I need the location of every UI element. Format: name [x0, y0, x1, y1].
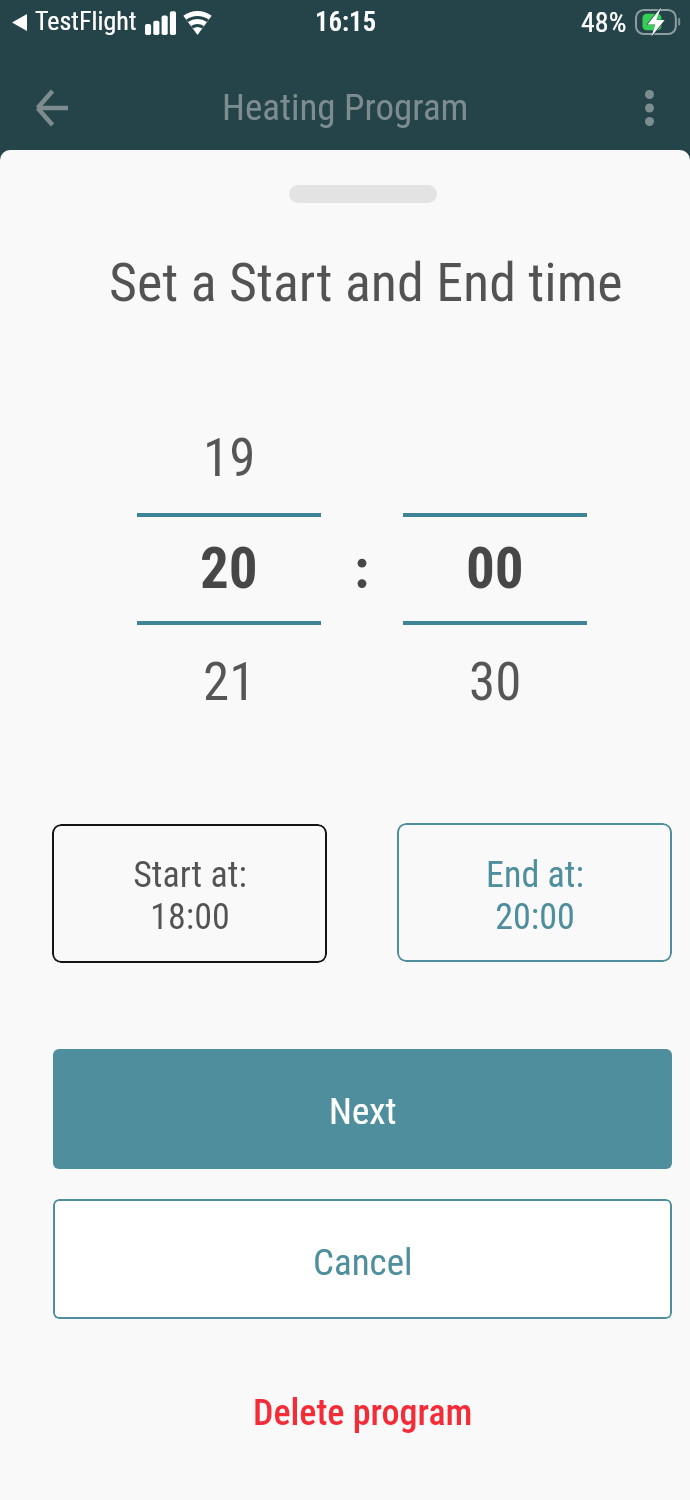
- staticText: 19: [203, 427, 256, 489]
- button[interactable]: End at: 20:00: [397, 823, 672, 962]
- staticText: 21: [203, 651, 256, 713]
- staticText: Next: [329, 1090, 397, 1133]
- button[interactable]: Back: [4, 60, 100, 156]
- staticText: 30: [469, 651, 522, 713]
- staticText: Delete program: [253, 1392, 473, 1434]
- staticText: Cancel: [313, 1241, 413, 1284]
- staticText: Start at: 18:00: [133, 854, 247, 938]
- staticText: End at: 20:00: [486, 854, 584, 938]
- button[interactable]: Next: [53, 1049, 672, 1169]
- button[interactable]: Delete program: [250, 1388, 476, 1438]
- staticText: TestFlight: [35, 6, 137, 36]
- staticText: 48%: [581, 6, 627, 39]
- staticText: 16:15: [315, 6, 377, 38]
- button[interactable]: Cancel: [53, 1199, 672, 1319]
- button[interactable]: More options: [608, 67, 690, 149]
- staticText: 20: [200, 535, 258, 602]
- staticText: Set a Start and End time: [109, 251, 623, 314]
- staticText: 00: [466, 535, 524, 602]
- staticText: Heating Program: [222, 86, 469, 129]
- button[interactable]: Start at: 18:00: [52, 824, 327, 963]
